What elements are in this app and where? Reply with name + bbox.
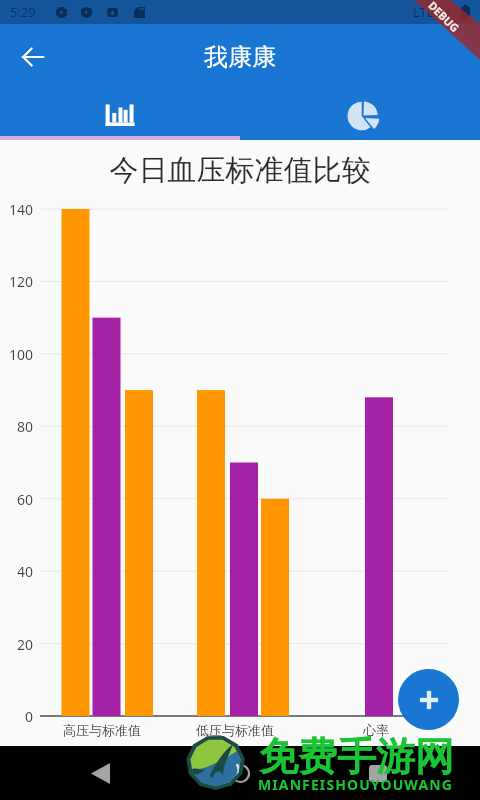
staticText: 40 xyxy=(0,562,33,581)
staticText: 今日血压标准值比较 xyxy=(0,152,480,189)
staticText: DEBUG xyxy=(425,0,463,35)
button[interactable]: Bar chart tab xyxy=(0,86,240,140)
staticText: 20 xyxy=(0,635,33,654)
button[interactable]: Pie chart tab xyxy=(240,86,480,140)
staticText: 心率 xyxy=(363,722,389,738)
button[interactable]: Add xyxy=(398,669,459,730)
button[interactable]: Back xyxy=(9,33,57,81)
staticText: 0 xyxy=(0,707,33,726)
staticText: 80 xyxy=(0,417,33,436)
staticText: LTE xyxy=(413,3,435,21)
staticText: 60 xyxy=(0,490,33,509)
staticText: 低压与标准值 xyxy=(196,722,274,738)
staticText: 免费手游网 xyxy=(259,732,454,781)
staticText: 120 xyxy=(0,272,33,291)
button[interactable]: Recents xyxy=(360,755,396,791)
staticText: 我康康 xyxy=(204,42,276,72)
staticText: 140 xyxy=(0,200,33,219)
staticText: 高压与标准值 xyxy=(63,722,141,738)
staticText: 100 xyxy=(0,345,33,364)
staticText: 5:29 xyxy=(10,3,36,21)
button[interactable]: Back xyxy=(81,754,119,792)
staticText: MIANFEISHOUYOUWANG xyxy=(258,775,453,794)
button[interactable]: Home xyxy=(222,755,258,791)
